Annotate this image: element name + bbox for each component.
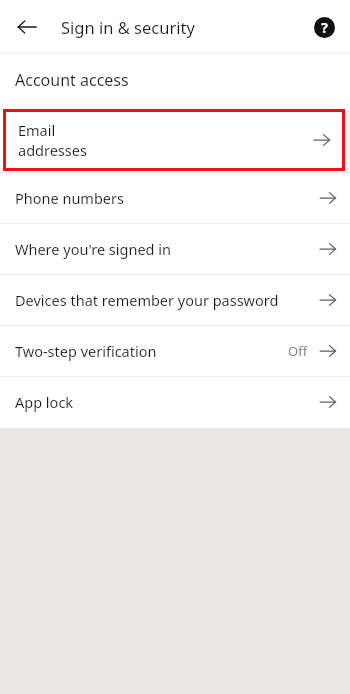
- staticText: Account access: [15, 69, 129, 91]
- staticText: Off: [288, 342, 308, 360]
- staticText: Phone numbers: [15, 188, 319, 208]
- button[interactable]: Where you're signed in: [0, 224, 350, 274]
- button[interactable]: Two-step verification: [0, 326, 350, 376]
- button[interactable]: Back: [14, 14, 40, 40]
- staticText: Devices that remember your password: [15, 290, 319, 310]
- button[interactable]: Email: [6, 112, 342, 168]
- staticText: Sign in & security: [61, 16, 195, 38]
- staticText: Email: [18, 120, 56, 140]
- button[interactable]: Help: [311, 14, 337, 40]
- button[interactable]: Phone numbers: [0, 173, 350, 223]
- button[interactable]: Devices that remember your password: [0, 275, 350, 325]
- staticText: Two-step verification: [15, 341, 288, 361]
- button[interactable]: App lock: [0, 377, 350, 427]
- staticText: App lock: [15, 392, 319, 412]
- staticText: ?: [321, 18, 328, 37]
- staticText: addresses: [18, 140, 87, 160]
- staticText: Where you're signed in: [15, 239, 319, 259]
